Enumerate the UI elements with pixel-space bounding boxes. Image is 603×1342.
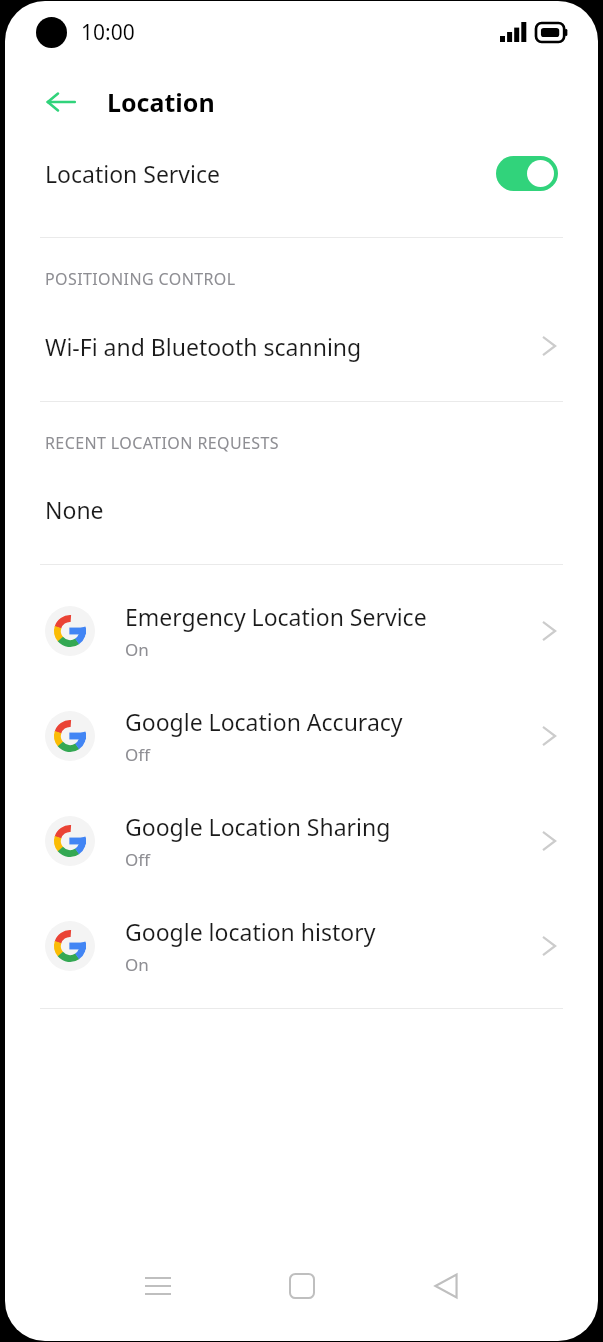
button[interactable]: Location Service toggle <box>496 156 558 191</box>
staticText: Google location history <box>125 916 376 947</box>
staticText: Off <box>125 848 150 871</box>
staticText: Emergency Location Service <box>125 601 427 632</box>
staticText: On <box>125 638 149 661</box>
button[interactable]: Back <box>39 80 83 124</box>
button[interactable]: Google Location Sharing <box>5 788 598 893</box>
staticText: Google Location Accuracy <box>125 706 403 737</box>
staticText: On <box>125 953 149 976</box>
staticText: RECENT LOCATION REQUESTS <box>45 432 279 454</box>
staticText: Google Location Sharing <box>125 811 391 842</box>
button[interactable]: Back <box>411 1261 481 1311</box>
staticText: Location <box>107 85 215 119</box>
staticText: Location Service <box>45 158 496 189</box>
button[interactable]: None <box>5 489 598 529</box>
button[interactable]: Wi-Fi and Bluetooth scanning <box>5 326 598 366</box>
staticText: Wi-Fi and Bluetooth scanning <box>45 331 542 362</box>
button[interactable]: Home <box>267 1261 337 1311</box>
button[interactable]: Google location history <box>5 893 598 998</box>
button[interactable]: Location Service <box>5 141 598 205</box>
staticText: POSITIONING CONTROL <box>45 268 236 290</box>
button[interactable]: Emergency Location Service <box>5 578 598 683</box>
staticText: None <box>45 494 104 525</box>
staticText: Off <box>125 743 150 766</box>
staticText: 10:00 <box>81 18 135 47</box>
button[interactable]: Google Location Accuracy <box>5 683 598 788</box>
button[interactable]: Recent apps <box>123 1261 193 1311</box>
